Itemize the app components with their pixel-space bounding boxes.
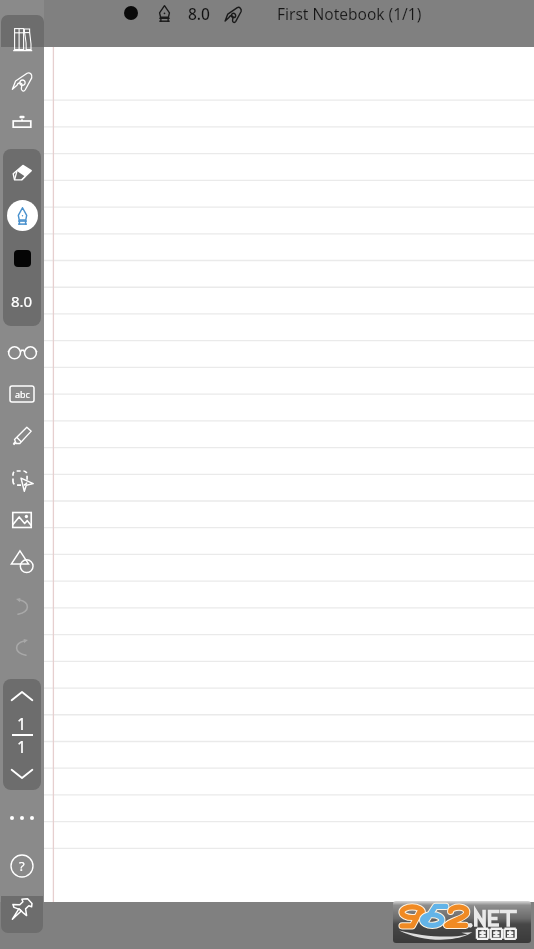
button[interactable]: Hand xyxy=(221,2,245,26)
button[interactable]: Eraser xyxy=(1,151,43,193)
button[interactable]: Colour xyxy=(14,250,31,267)
button[interactable]: Previous page xyxy=(3,682,41,710)
button[interactable]: Pan xyxy=(1,60,43,102)
button[interactable]: Stroke colour xyxy=(119,1,143,25)
button[interactable]: More options xyxy=(1,797,43,839)
button[interactable]: Ruler xyxy=(1,100,43,142)
button[interactable]: First Notebook (1/1) xyxy=(275,0,423,26)
staticText: 1 xyxy=(17,713,27,735)
button[interactable]: Pin toolbar xyxy=(1,896,43,933)
button[interactable]: Pen xyxy=(152,2,176,26)
button[interactable]: Shapes xyxy=(1,540,43,582)
button[interactable]: Help xyxy=(1,845,43,887)
button[interactable]: Highlighter xyxy=(1,415,43,457)
staticText: ? xyxy=(19,857,25,875)
button[interactable]: Read only xyxy=(1,331,43,373)
button[interactable]: Text xyxy=(1,373,43,415)
button[interactable]: 8.0 xyxy=(183,1,213,25)
staticText: 8.0 xyxy=(188,3,210,24)
button[interactable]: Select xyxy=(1,459,43,501)
button[interactable]: Next page xyxy=(3,760,41,788)
button[interactable]: Fountain pen xyxy=(7,200,38,231)
staticText: abc xyxy=(15,388,30,400)
staticText: 8.0 xyxy=(11,291,33,311)
button[interactable]: Notebooks xyxy=(1,18,43,60)
button[interactable]: Undo xyxy=(1,586,43,628)
staticText: First Notebook (1/1) xyxy=(277,3,422,24)
button[interactable]: Redo xyxy=(1,627,43,669)
button[interactable]: Insert image xyxy=(1,499,43,541)
staticText: 1 xyxy=(17,736,27,758)
button[interactable]: Thickness xyxy=(3,288,41,314)
